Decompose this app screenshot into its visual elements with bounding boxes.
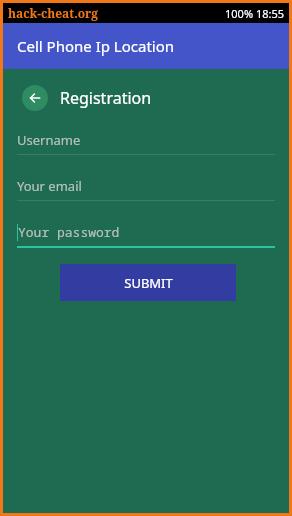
button[interactable]: SUBMIT <box>60 264 236 301</box>
staticText: Username <box>17 131 81 149</box>
button[interactable]: Username <box>17 131 275 155</box>
staticText: Cell Phone Ip Location <box>17 36 175 56</box>
staticText: SUBMIT <box>124 274 173 292</box>
staticText: Your email <box>17 177 82 195</box>
staticText: Your password <box>18 223 120 241</box>
button[interactable]: Back <box>22 85 48 111</box>
button[interactable]: Your email <box>17 177 275 201</box>
button[interactable]: Your password <box>17 223 275 248</box>
staticText: hack-cheat.org <box>8 5 99 21</box>
staticText: 100% 18:55 <box>225 6 284 21</box>
staticText: Registration <box>60 87 152 109</box>
